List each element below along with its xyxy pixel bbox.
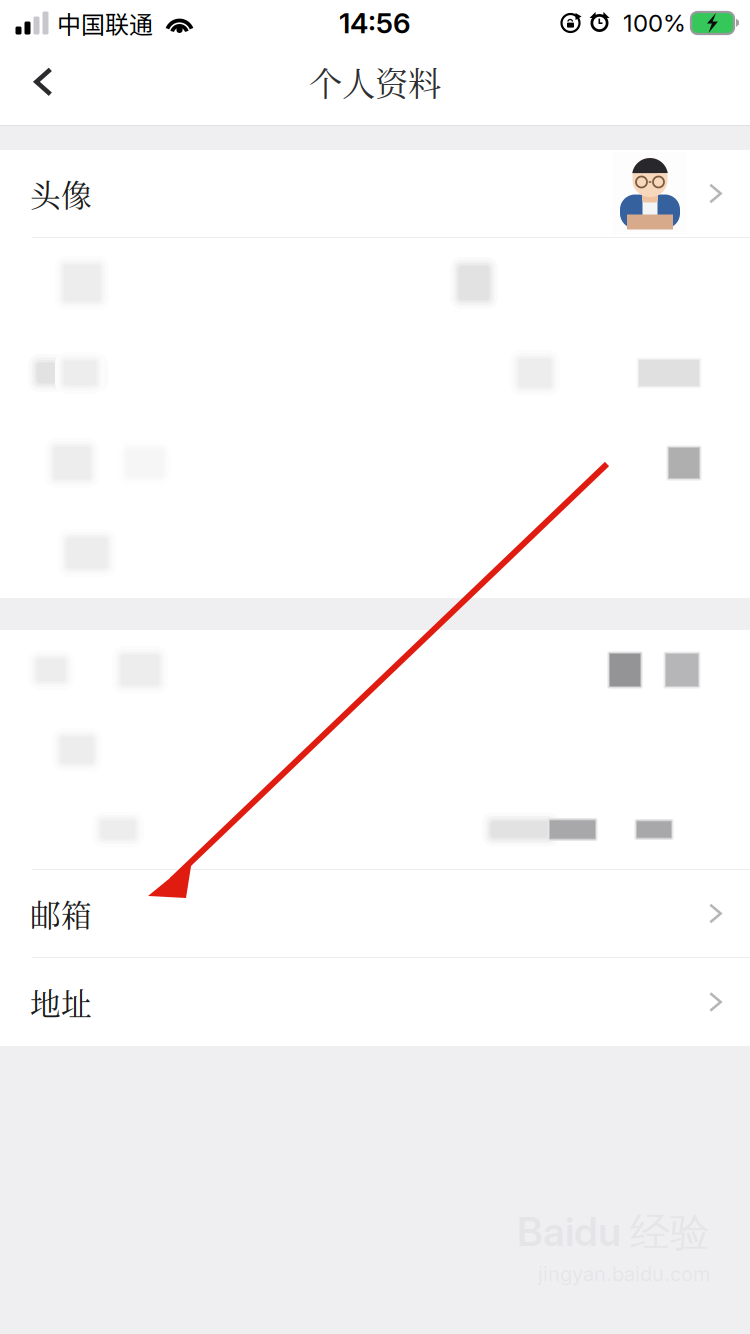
button[interactable]: 资料项 [0,418,750,508]
staticText: 个人资料 [309,58,441,105]
button[interactable]: 地址 [0,958,750,1046]
staticText: 地址 [30,980,92,1024]
button[interactable]: 资料项 [0,630,750,710]
button[interactable]: 资料项 [0,238,750,328]
button[interactable]: 资料项 [0,790,750,869]
staticText: jingyan.baidu.com [538,1262,710,1286]
button[interactable]: 资料项 [0,328,750,418]
staticText: 中国联通 [57,6,153,40]
button[interactable]: 资料项 [0,508,750,598]
button[interactable]: 邮箱 [0,870,750,957]
button[interactable]: 头像 [0,150,750,237]
button[interactable]: 资料项 [0,710,750,790]
staticText: 14:56 [339,6,411,40]
staticText: 邮箱 [30,891,92,936]
staticText: 100% [623,8,686,37]
button[interactable]: 返回 [0,46,100,126]
staticText: Baidu 经验 [517,1207,710,1258]
staticText: 头像 [30,171,92,216]
